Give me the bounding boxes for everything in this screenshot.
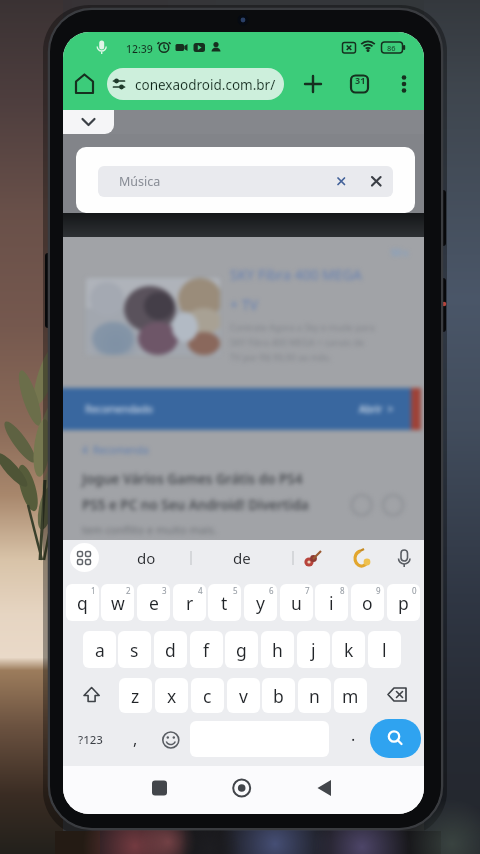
- button[interactable]: b: [262, 678, 295, 713]
- staticText: Música: [119, 173, 161, 190]
- button[interactable]: e: [137, 584, 170, 621]
- staticText: m: [342, 684, 359, 708]
- staticText: ,: [133, 728, 138, 750]
- staticText: b: [273, 684, 284, 708]
- button[interactable]: p: [387, 584, 420, 621]
- button[interactable]: [346, 70, 374, 98]
- staticText: ?123: [78, 732, 103, 748]
- button[interactable]: n: [298, 678, 331, 713]
- staticText: Jogue Vários Games Grátis do PS4: [82, 470, 303, 488]
- button[interactable]: f: [190, 631, 223, 668]
- staticText: 5: [233, 585, 238, 596]
- button[interactable]: [364, 162, 390, 188]
- button[interactable]: [390, 70, 418, 98]
- button[interactable]: m: [334, 678, 367, 713]
- staticText: d: [165, 638, 176, 662]
- staticText: 9: [376, 585, 381, 596]
- staticText: Abrir >: [359, 402, 394, 416]
- button[interactable]: a: [83, 631, 116, 668]
- button[interactable]: [147, 776, 173, 802]
- staticText: q: [77, 591, 88, 615]
- staticText: Recomendado: [85, 402, 153, 416]
- button[interactable]: d: [154, 631, 187, 668]
- button[interactable]: y: [244, 584, 277, 621]
- staticText: n: [309, 684, 320, 708]
- button[interactable]: i: [315, 584, 348, 621]
- button[interactable]: l: [368, 631, 401, 668]
- button[interactable]: t: [208, 584, 241, 621]
- button[interactable]: v: [227, 678, 260, 713]
- staticText: 86: [387, 43, 396, 53]
- button[interactable]: [70, 70, 100, 98]
- staticText: 4 Recomenda: [82, 443, 149, 457]
- staticText: .: [351, 724, 356, 746]
- button[interactable]: [311, 776, 337, 802]
- staticText: i: [329, 591, 334, 615]
- staticText: a: [95, 638, 105, 662]
- button[interactable]: g: [225, 631, 258, 668]
- staticText: t: [221, 591, 228, 615]
- staticText: f: [203, 638, 210, 662]
- staticText: z: [131, 684, 140, 708]
- staticText: SKY Fibra 400 MEGA: [230, 265, 362, 284]
- staticText: de: [233, 548, 251, 568]
- staticText: y: [256, 591, 265, 615]
- button[interactable]: [63, 110, 114, 134]
- button[interactable]: [329, 162, 353, 186]
- staticText: 31: [355, 74, 366, 86]
- button[interactable]: x: [155, 678, 188, 713]
- button[interactable]: h: [261, 631, 294, 668]
- button[interactable]: k: [332, 631, 365, 668]
- staticText: p: [398, 591, 409, 615]
- button[interactable]: do: [121, 543, 171, 573]
- staticText: PS5 e PC no Seu Android! Divertida: [82, 496, 309, 514]
- button[interactable]: o: [351, 584, 384, 621]
- staticText: k: [344, 638, 354, 662]
- staticText: conexaodroid.com.br/: [135, 76, 276, 94]
- button[interactable]: s: [118, 631, 151, 668]
- staticText: 1: [91, 585, 96, 596]
- staticText: 7: [305, 585, 310, 596]
- staticText: 3: [162, 585, 167, 596]
- staticText: c: [203, 684, 212, 708]
- staticText: + TV: [230, 295, 258, 314]
- staticText: w: [111, 591, 125, 615]
- staticText: l: [382, 638, 387, 662]
- staticText: x: [167, 684, 177, 708]
- staticText: h: [272, 638, 283, 662]
- button[interactable]: u: [280, 584, 313, 621]
- staticText: s: [130, 638, 139, 662]
- button[interactable]: [370, 719, 421, 758]
- button[interactable]: j: [297, 631, 330, 668]
- staticText: g: [236, 638, 247, 662]
- staticText: 8: [340, 585, 345, 596]
- staticText: tem conflito e muito mais.: [82, 522, 217, 537]
- button[interactable]: [299, 70, 327, 98]
- staticText: do: [137, 548, 156, 568]
- button[interactable]: w: [101, 584, 134, 621]
- button[interactable]: c: [191, 678, 224, 713]
- staticText: 4: [198, 585, 203, 596]
- button[interactable]: [70, 543, 99, 572]
- staticText: j: [311, 638, 316, 662]
- button[interactable]: r: [173, 584, 206, 621]
- staticText: 12:39: [126, 42, 153, 56]
- button[interactable]: z: [119, 678, 152, 713]
- button[interactable]: q: [66, 584, 99, 621]
- staticText: 0: [412, 585, 417, 596]
- staticText: 6: [269, 585, 274, 596]
- button[interactable]: [229, 776, 255, 802]
- staticText: o: [362, 591, 373, 615]
- staticText: r: [186, 591, 194, 615]
- button[interactable]: de: [217, 543, 267, 573]
- staticText: e: [149, 591, 159, 615]
- staticText: 50 s: [391, 246, 408, 258]
- staticText: 2: [126, 585, 131, 596]
- staticText: v: [239, 684, 248, 708]
- button[interactable]: [107, 68, 284, 100]
- staticText: u: [291, 591, 302, 615]
